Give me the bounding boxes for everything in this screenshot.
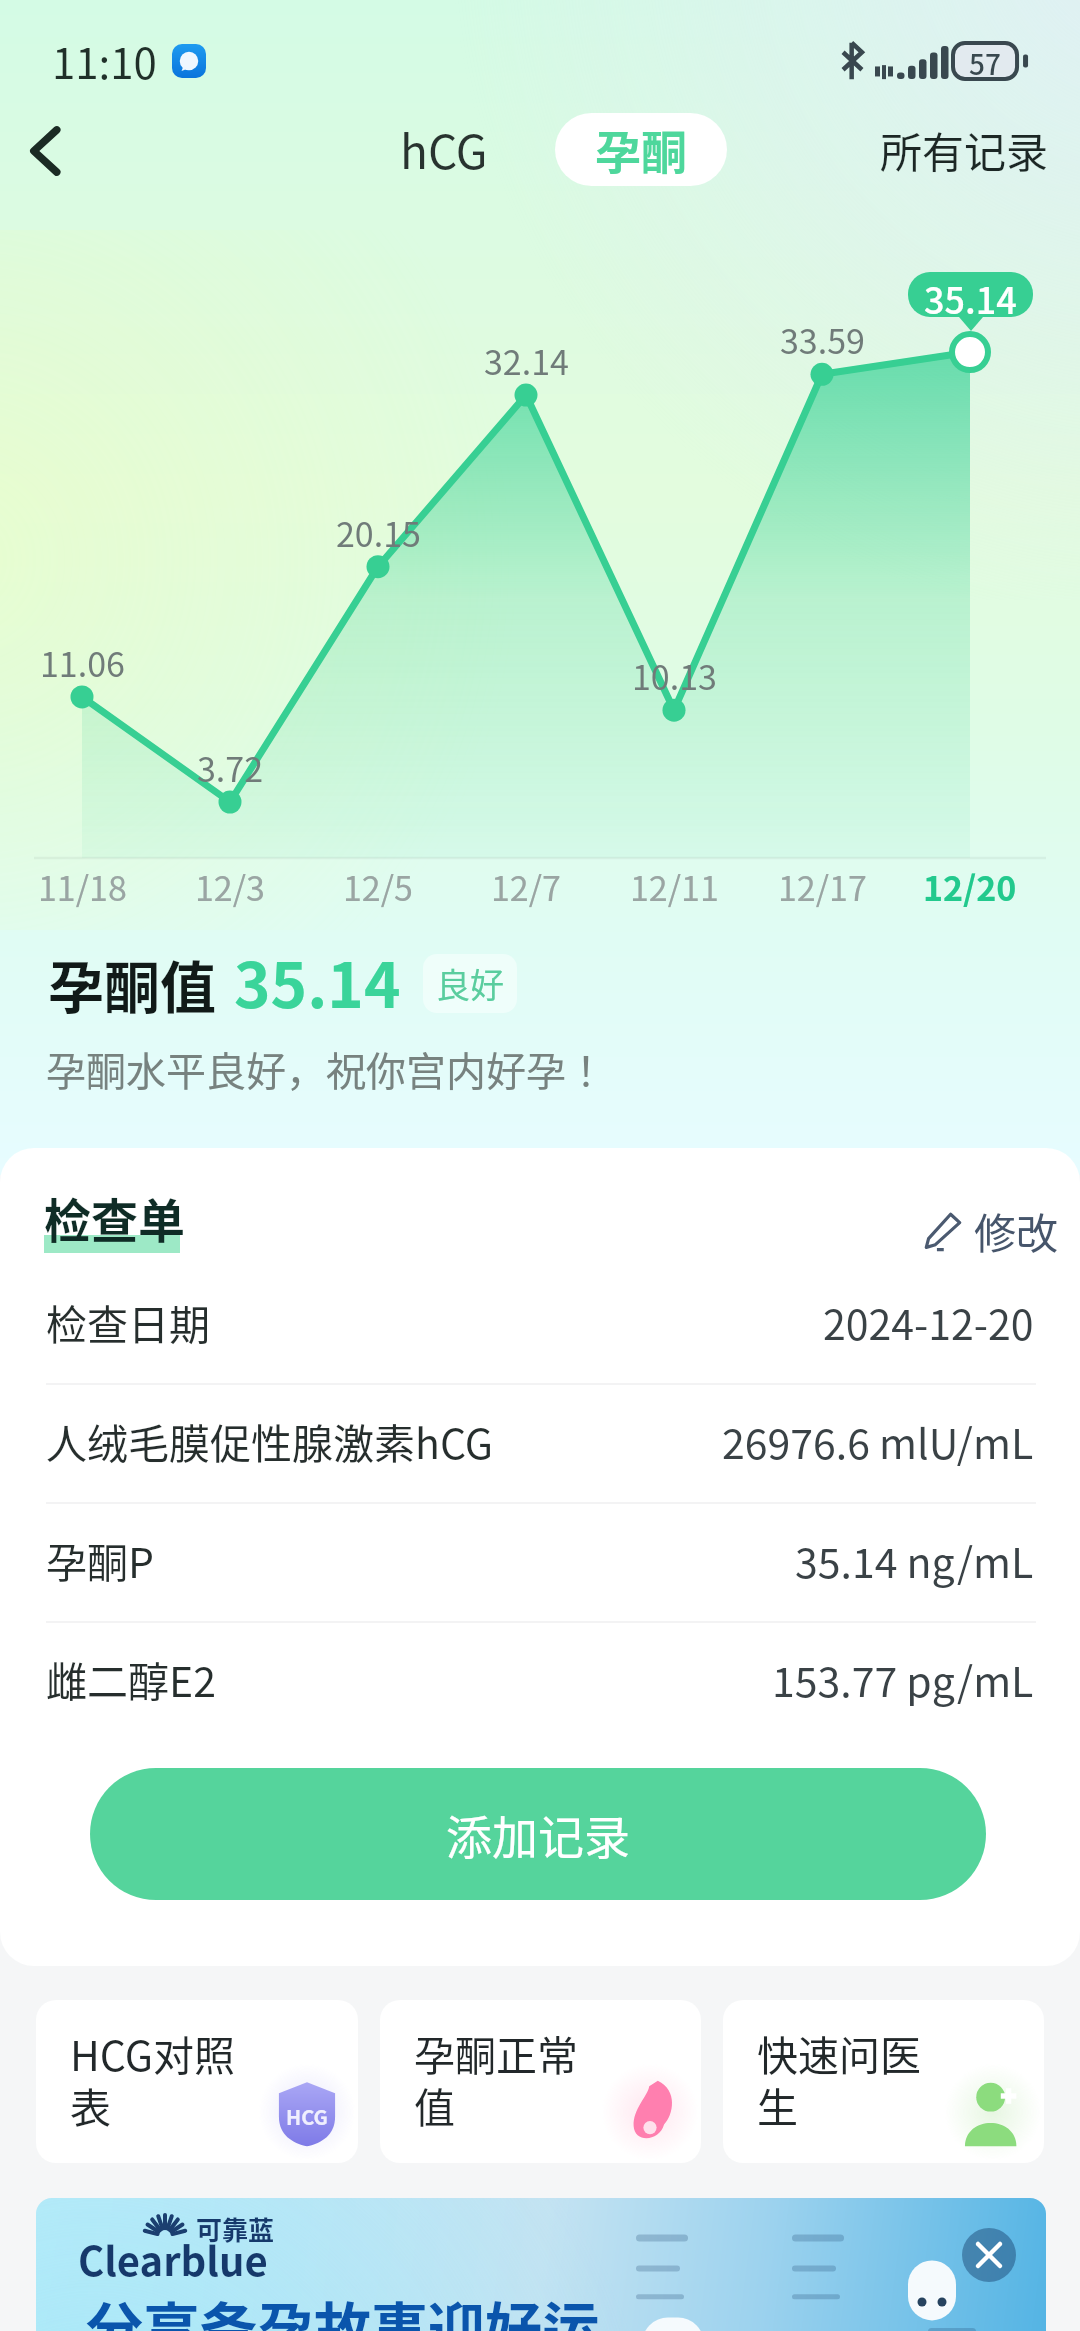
button[interactable]: 孕酮P [0,1500,1080,1618]
staticText: 检查单 [44,1183,185,1251]
staticText: 12/3 [195,862,265,911]
staticText: 所有记录 [880,119,1049,180]
staticText: 11:10 [52,30,157,91]
staticText: 分享备孕故事迎好运 [86,2284,599,2331]
button[interactable]: Clearblue [36,2198,1046,2331]
staticText: 12/17 [778,862,867,911]
staticText: 32.14 [484,336,569,385]
staticText: 12/11 [630,862,719,911]
button[interactable]: 孕酮 [555,113,727,186]
staticText: 57 [969,43,1001,79]
button[interactable]: 所有记录 [870,113,1059,186]
staticText: 35.14 [924,272,1017,317]
button[interactable]: 孕酮正常 值 [380,2000,701,2163]
staticText: 153.77 pg/mL [772,1649,1034,1708]
staticText: 11/18 [38,862,127,911]
button[interactable]: Close ad [962,2228,1016,2282]
button[interactable]: 添加记录 [90,1768,986,1900]
staticText: 26976.6 mlU/mL [722,1411,1034,1470]
staticText: 20.15 [336,508,421,557]
staticText: 快速问医 生 [757,2023,921,2134]
staticText: 33.59 [780,315,865,364]
staticText: 检查日期 [46,1292,210,1351]
staticText: hCG [400,116,488,183]
staticText: 良好 [436,959,504,1008]
button[interactable]: Back [0,106,90,196]
button[interactable]: 检查日期 [0,1262,1080,1380]
button[interactable]: HCG对照 表 [36,2000,358,2163]
staticText: 35.14 ng/mL [795,1530,1034,1589]
button[interactable]: 快速问医 生 [723,2000,1044,2163]
staticText: 雌二醇E2 [46,1649,216,1708]
staticText: 孕酮值 [48,943,216,1024]
staticText: 11.06 [40,638,125,687]
staticText: HCG对照 表 [70,2023,235,2134]
staticText: 3.72 [197,743,264,792]
staticText: 孕酮水平良好，祝你宫内好孕！ [46,1040,606,1098]
button[interactable]: 人绒毛膜促性腺激素hCG [0,1381,1080,1499]
staticText: 12/7 [491,862,561,911]
staticText: 添加记录 [446,1801,630,1868]
staticText: 35.14 [234,936,401,1026]
staticText: 12/5 [343,862,413,911]
staticText: 孕酮P [46,1530,154,1589]
staticText: Clearblue [78,2230,268,2288]
button[interactable]: 修改 [918,1194,1065,1267]
staticText: HCG [286,2102,328,2131]
staticText: 可靠蓝 [196,2210,275,2248]
staticText: 人绒毛膜促性腺激素hCG [46,1411,493,1470]
staticText: 12/20 [923,862,1017,911]
button[interactable]: hCG [356,113,532,186]
staticText: 2024-12-20 [823,1292,1034,1351]
button[interactable]: 雌二醇E2 [0,1619,1080,1737]
staticText: 修改 [974,1200,1059,1261]
staticText: 孕酮 [595,116,687,183]
staticText: 10.13 [632,651,717,700]
staticText: 孕酮正常 值 [414,2023,578,2134]
